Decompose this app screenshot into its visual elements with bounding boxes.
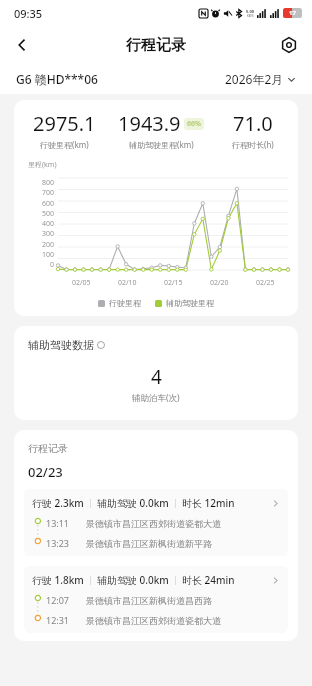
- staticText: 行驶 1.8km: [32, 573, 84, 587]
- staticText: 200: [41, 240, 54, 250]
- staticText: 02/10: [118, 278, 137, 288]
- button[interactable]: 辅助驾驶数据: [28, 338, 105, 352]
- staticText: 时长 12min: [182, 496, 235, 510]
- staticText: 12:31: [46, 614, 70, 626]
- staticText: 里程(km): [28, 160, 57, 170]
- staticText: 1943.9: [118, 110, 181, 137]
- staticText: 13:11: [46, 517, 70, 529]
- staticText: 600: [41, 199, 54, 209]
- staticText: 800: [41, 178, 54, 188]
- staticText: 2975.1: [33, 110, 96, 137]
- staticText: 71.0: [233, 110, 273, 137]
- staticText: 02/15: [164, 278, 183, 288]
- staticText: 400: [41, 219, 54, 229]
- staticText: KB/S: [247, 14, 254, 18]
- staticText: G6 赣HD***06: [16, 71, 98, 87]
- staticText: 行驶里程: [109, 298, 141, 308]
- staticText: 辅助驾驶里程(km): [129, 139, 194, 150]
- staticText: 700: [41, 188, 54, 198]
- staticText: 辅助驾驶数据: [28, 338, 94, 352]
- button[interactable]: 行驶 2.3km: [24, 489, 288, 556]
- staticText: 300: [41, 229, 54, 239]
- staticText: 行程时长(h): [232, 139, 274, 150]
- staticText: 02/25: [256, 278, 275, 288]
- staticText: 行程记录: [126, 36, 186, 55]
- staticText: 行程记录: [28, 442, 68, 455]
- staticText: 辅助驾驶 0.0km: [97, 573, 169, 587]
- staticText: 行驶里程(km): [40, 139, 89, 150]
- button[interactable]: Back: [6, 29, 38, 61]
- button[interactable]: 行驶 1.8km: [24, 566, 288, 633]
- staticText: 景德镇市昌江区新枫街道昌西路: [86, 595, 212, 606]
- staticText: 02/20: [210, 278, 229, 288]
- staticText: 辅助驾驶 0.0km: [97, 496, 169, 510]
- staticText: 景德镇市昌江区新枫街道新平路: [86, 538, 212, 549]
- staticText: 0: [49, 260, 54, 270]
- staticText: 100: [41, 250, 54, 260]
- staticText: 辅助驾驶里程: [166, 298, 214, 308]
- button[interactable]: 2026年2月: [225, 71, 296, 87]
- button[interactable]: Settings: [274, 30, 304, 60]
- staticText: 09:35: [14, 6, 43, 21]
- staticText: 66%: [187, 119, 201, 129]
- staticText: 景德镇市昌江区西郊街道瓷都大道: [86, 518, 221, 529]
- staticText: 4: [151, 364, 162, 390]
- staticText: 5.00: [246, 9, 254, 14]
- staticText: 13:23: [46, 537, 70, 549]
- staticText: 02/05: [72, 278, 91, 288]
- other: Info: [97, 341, 105, 349]
- staticText: 时长 24min: [182, 573, 235, 587]
- staticText: 500: [41, 209, 54, 219]
- staticText: 12:07: [46, 594, 70, 606]
- staticText: 2026年2月: [225, 71, 284, 87]
- staticText: 行驶 2.3km: [32, 496, 84, 510]
- staticText: 02/23: [28, 463, 63, 481]
- staticText: 辅助泊车(次): [132, 392, 180, 404]
- staticText: 景德镇市昌江区西郊街道瓷都大道: [86, 615, 221, 626]
- staticText: 17: [289, 9, 296, 17]
